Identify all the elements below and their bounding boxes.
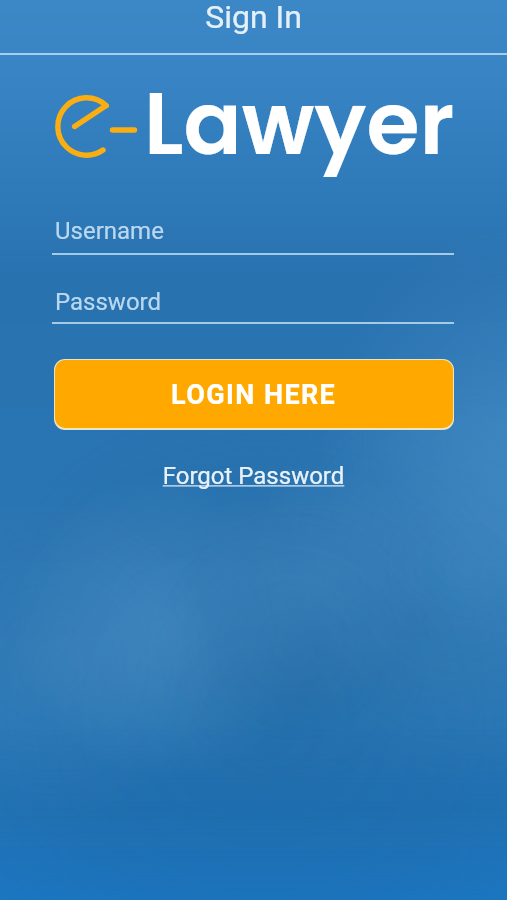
- button[interactable]: Forgot Password: [0, 462, 507, 490]
- button[interactable]: Password: [52, 275, 454, 324]
- button[interactable]: Username: [52, 204, 454, 255]
- button[interactable]: LOGIN HERE: [55, 360, 453, 428]
- staticText: Lawyer: [144, 64, 455, 184]
- staticText: LOGIN HERE: [171, 379, 337, 411]
- other: e-Lawyer logo: [40, 85, 150, 170]
- staticText: Sign In: [0, 0, 507, 36]
- staticText: Password: [55, 288, 162, 316]
- staticText: Username: [55, 217, 164, 245]
